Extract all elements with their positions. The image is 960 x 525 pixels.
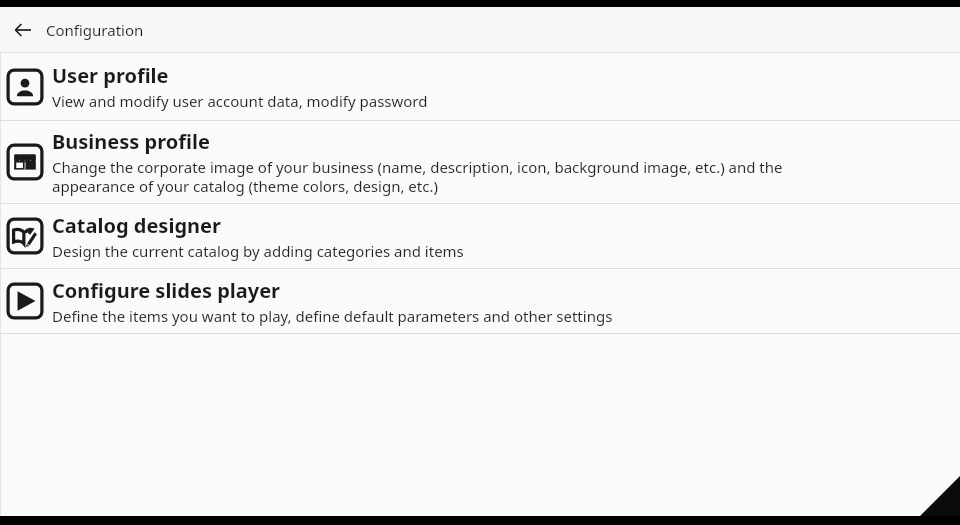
button[interactable]: Catalog designer <box>0 204 960 268</box>
staticText: Design the current catalog by adding cat… <box>52 241 464 261</box>
staticText: Configuration <box>46 20 144 40</box>
button[interactable]: User profile <box>0 53 960 120</box>
staticText: Business profile <box>52 128 210 155</box>
staticText: Configure slides player <box>52 277 281 304</box>
button[interactable]: Business profile <box>0 121 960 203</box>
staticText: View and modify user account data, modif… <box>52 91 428 111</box>
button[interactable]: Back <box>8 15 38 45</box>
staticText: User profile <box>52 62 169 89</box>
other: Back <box>13 20 33 40</box>
staticText: Change the corporate image of your busin… <box>52 157 783 196</box>
staticText: Define the items you want to play, defin… <box>52 306 613 326</box>
button[interactable]: Configure slides player <box>0 269 960 333</box>
staticText: Catalog designer <box>52 212 221 239</box>
